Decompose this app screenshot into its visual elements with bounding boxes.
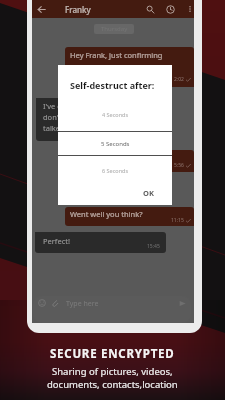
staticText: 11:15 <box>171 217 184 224</box>
button[interactable]: More options <box>186 5 194 13</box>
staticText: 5:56 <box>174 162 184 169</box>
staticText: 2:02 <box>174 76 184 83</box>
staticText: SECURE ENCRYPTED <box>50 346 175 362</box>
staticText: Went well you think? <box>70 209 143 219</box>
button[interactable]: Back <box>32 0 50 18</box>
button[interactable]: 6 Seconds <box>58 159 172 182</box>
staticText: Franky <box>65 4 91 15</box>
staticText: Sharing of pictures, videos, <box>52 365 173 378</box>
staticText: 6 Seconds <box>102 167 129 174</box>
staticText: Hey Frank, just confirming <box>70 50 163 60</box>
staticText: I've got news, <box>43 101 92 111</box>
staticText: 5 Seconds <box>101 140 130 148</box>
staticText: talked? <box>43 123 68 133</box>
button[interactable]: Self destruct timer <box>162 1 179 18</box>
button[interactable]: 4 Seconds <box>58 103 172 126</box>
button[interactable]: OK <box>129 184 172 205</box>
staticText: documents, contacts,location <box>47 378 178 391</box>
staticText: don't want to <box>43 112 90 122</box>
button[interactable]: Search <box>141 0 159 18</box>
button[interactable]: Type here <box>33 296 191 323</box>
staticText: Perfect! <box>43 236 70 246</box>
button[interactable]: 5 Seconds <box>58 132 172 155</box>
staticText: 15:45 <box>147 243 160 250</box>
staticText: OK <box>143 188 154 198</box>
staticText: 4 Seconds <box>102 111 129 118</box>
staticText: Self-destruct after: <box>70 79 155 91</box>
staticText: Type here <box>66 299 99 309</box>
